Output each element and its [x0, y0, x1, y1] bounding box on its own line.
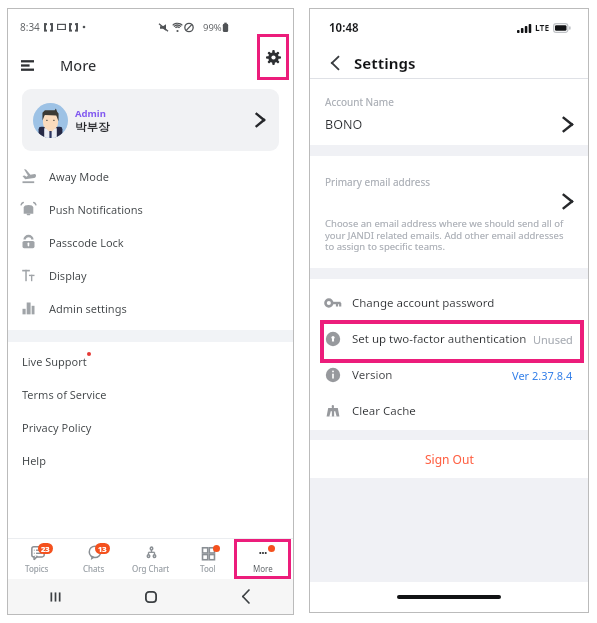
button[interactable]: Passcode Lock — [8, 226, 293, 259]
staticText: Version — [352, 367, 393, 383]
staticText: BONO — [325, 116, 363, 133]
staticText: Live Support — [22, 354, 87, 369]
button[interactable]: Back — [324, 52, 346, 74]
staticText: Unused — [533, 332, 573, 347]
button[interactable]: Push Notifications — [8, 193, 293, 226]
staticText: Ver 2.37.8.4 — [512, 368, 573, 383]
staticText: Push Notifications — [49, 202, 143, 217]
button[interactable]: Help — [8, 444, 293, 477]
staticText: Clear Cache — [352, 403, 416, 419]
button[interactable]: Menu — [8, 45, 47, 85]
staticText: Settings — [354, 53, 416, 73]
button[interactable]: Sign Out — [310, 440, 588, 478]
staticText: Account Name — [325, 95, 394, 109]
button[interactable]: 23 — [8, 539, 65, 579]
staticText: 박부장 — [75, 120, 110, 134]
button[interactable]: Org Chart — [122, 539, 179, 579]
staticText: Set up two-factor authentication — [352, 331, 527, 347]
staticText: Help — [22, 453, 46, 468]
staticText: Primary email address — [325, 175, 430, 189]
staticText: LTE — [535, 22, 550, 34]
button[interactable]: Live Support — [8, 345, 293, 378]
button[interactable]: BONO — [325, 109, 573, 139]
staticText: Passcode Lock — [49, 235, 124, 250]
staticText: More — [253, 563, 273, 574]
button[interactable]: Settings — [257, 34, 289, 80]
staticText: 8:34 — [20, 20, 40, 34]
staticText: 23 — [41, 544, 50, 554]
button[interactable]: 13 — [65, 539, 122, 579]
staticText: Org Chart — [132, 563, 170, 574]
staticText: Admin settings — [49, 301, 127, 316]
button[interactable]: More — [234, 539, 291, 579]
staticText: Privacy Policy — [22, 420, 92, 435]
button[interactable]: Away Mode — [8, 160, 293, 193]
staticText: More — [60, 55, 97, 75]
staticText: Chats — [83, 563, 105, 574]
staticText: Terms of Service — [22, 387, 107, 402]
button[interactable]: Tool — [179, 539, 236, 579]
staticText: Display — [49, 268, 87, 283]
button[interactable]: Admin settings — [8, 292, 293, 325]
button[interactable]: Clear Cache — [310, 393, 588, 429]
staticText: Away Mode — [49, 169, 109, 184]
button[interactable]: Set up two-factor authentication — [310, 321, 588, 357]
staticText: Change account password — [352, 295, 495, 311]
staticText: 10:48 — [329, 20, 359, 36]
staticText: 99% — [203, 21, 222, 34]
staticText: Admin — [75, 107, 106, 120]
staticText: Tool — [200, 563, 216, 574]
button[interactable]: Version — [310, 357, 588, 393]
button[interactable]: Change account password — [310, 285, 588, 321]
staticText: Topics — [25, 563, 49, 574]
button[interactable]: Terms of Service — [8, 378, 293, 411]
button[interactable]: Display — [8, 259, 293, 292]
staticText: Choose an email address where we should … — [325, 217, 564, 253]
staticText: 13 — [98, 544, 107, 554]
staticText: Sign Out — [425, 451, 474, 467]
button[interactable]: Primary email address — [325, 175, 573, 211]
button[interactable]: Admin — [22, 89, 279, 151]
button[interactable]: Privacy Policy — [8, 411, 293, 444]
